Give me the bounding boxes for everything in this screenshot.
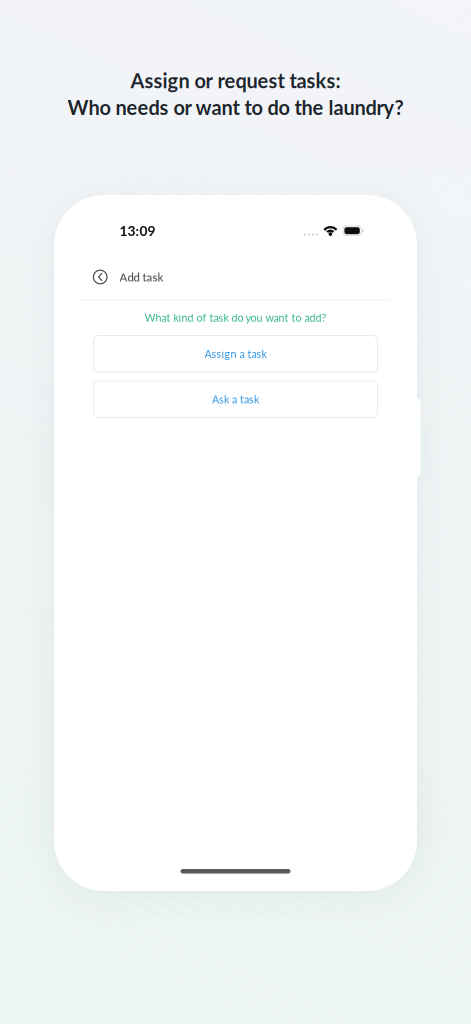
staticText: Who needs or want to do the laundry?	[67, 95, 403, 119]
button[interactable]: Back	[86, 263, 114, 291]
button[interactable]: Add task	[119, 266, 179, 288]
staticText: Ask a task	[212, 393, 259, 406]
staticText: 13:09	[119, 222, 155, 239]
button[interactable]: Ask a task	[93, 381, 377, 417]
staticText: What kind of task do you want to add?	[144, 311, 326, 324]
staticText: Assign or request tasks:	[130, 68, 340, 92]
button[interactable]: Assign a task	[93, 335, 377, 372]
staticText: Add task	[119, 270, 163, 284]
staticText: Assign a task	[204, 347, 266, 360]
